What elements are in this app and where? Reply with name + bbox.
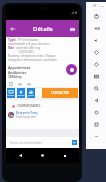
button[interactable]: Power (86, 10, 106, 22)
button[interactable]: Back (17, 152, 24, 159)
staticText: contrats 465 mg (15, 46, 41, 50)
button[interactable]: Rotate left (86, 46, 106, 58)
button[interactable]: Add (66, 64, 77, 75)
button[interactable]: Home (39, 152, 46, 159)
staticText: automatisé n.4 aux derniers (8, 42, 50, 46)
staticText: PP Ventilation (17, 38, 39, 42)
staticText: Routing: interphone inter. Chaque (8, 54, 56, 58)
button[interactable]: COMMENTAIRES (12, 104, 41, 108)
button[interactable]: Benjamin Patry (8, 111, 79, 119)
button[interactable]: CONTACTER (42, 88, 78, 98)
staticText: J'aime (28, 94, 35, 97)
staticText: CONTACTER (51, 91, 70, 95)
button[interactable]: Screenshot (86, 70, 106, 82)
staticText: Benjamin Patry (16, 111, 38, 115)
staticText: — (100, 3, 104, 8)
button[interactable]: Recent apps (61, 152, 68, 159)
button[interactable]: Favoris (17, 88, 25, 98)
button[interactable]: Attribute 2 (27, 82, 31, 86)
button[interactable]: Volume down (86, 34, 106, 46)
staticText: Type: (8, 38, 17, 42)
button[interactable]: Overview (86, 118, 106, 130)
button[interactable]: More (86, 130, 106, 142)
staticText: COMMENTAIRES (17, 104, 41, 108)
staticText: Appointment (8, 65, 31, 70)
staticText: Détails (33, 25, 53, 33)
staticText: 108 kitty (8, 75, 22, 79)
staticText: Favoris (17, 94, 25, 97)
button[interactable]: Volume up (86, 22, 106, 34)
staticText: Toute la journée (16, 115, 36, 119)
staticText: Ecrire un commentaire (10, 141, 43, 145)
button[interactable]: More options (67, 24, 77, 34)
staticText: ✕ (93, 3, 97, 8)
staticText: ultraparte infrastructure souhaitée (8, 58, 57, 62)
staticText: 12/09/2022 (8, 50, 44, 54)
button[interactable]: Zoom (86, 82, 106, 94)
button[interactable]: Rotate right (86, 58, 106, 70)
button[interactable]: Attribute 1 (18, 82, 22, 86)
button[interactable]: Attribute 0 (9, 82, 13, 86)
staticText: Antibiotics (8, 70, 27, 75)
button[interactable]: J'aime (27, 88, 35, 98)
button[interactable]: Home (86, 106, 106, 118)
button[interactable]: Back (7, 23, 18, 34)
button[interactable]: Back (86, 94, 106, 106)
button[interactable]: Comm. (7, 88, 15, 98)
staticText: Nbr: (8, 46, 15, 50)
button[interactable]: Send (72, 140, 77, 145)
staticText: Comm. (7, 94, 15, 97)
